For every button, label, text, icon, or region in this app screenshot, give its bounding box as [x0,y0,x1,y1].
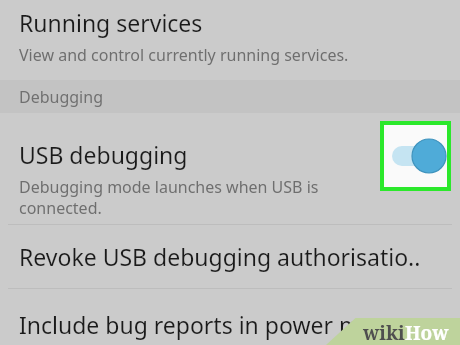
button[interactable]: USB debugging [0,113,460,224]
staticText: Revoke USB debugging authorisatio.. [19,241,421,272]
button[interactable]: Include bug reports in power m.. [0,289,460,345]
button[interactable]: Revoke USB debugging authorisatio.. [0,225,460,288]
button[interactable]: Running services [0,0,460,80]
staticText: wiki [363,320,405,345]
staticText: Debugging mode launches when USB is conn… [19,176,319,219]
staticText: How [405,320,449,345]
staticText: Include bug reports in power m.. [19,309,373,340]
staticText: USB debugging [19,139,188,170]
staticText: Running services [19,7,203,38]
staticText: Debugging [19,86,103,108]
button[interactable]: USB debugging toggle [380,121,451,191]
staticText: View and control currently running servi… [19,44,349,66]
